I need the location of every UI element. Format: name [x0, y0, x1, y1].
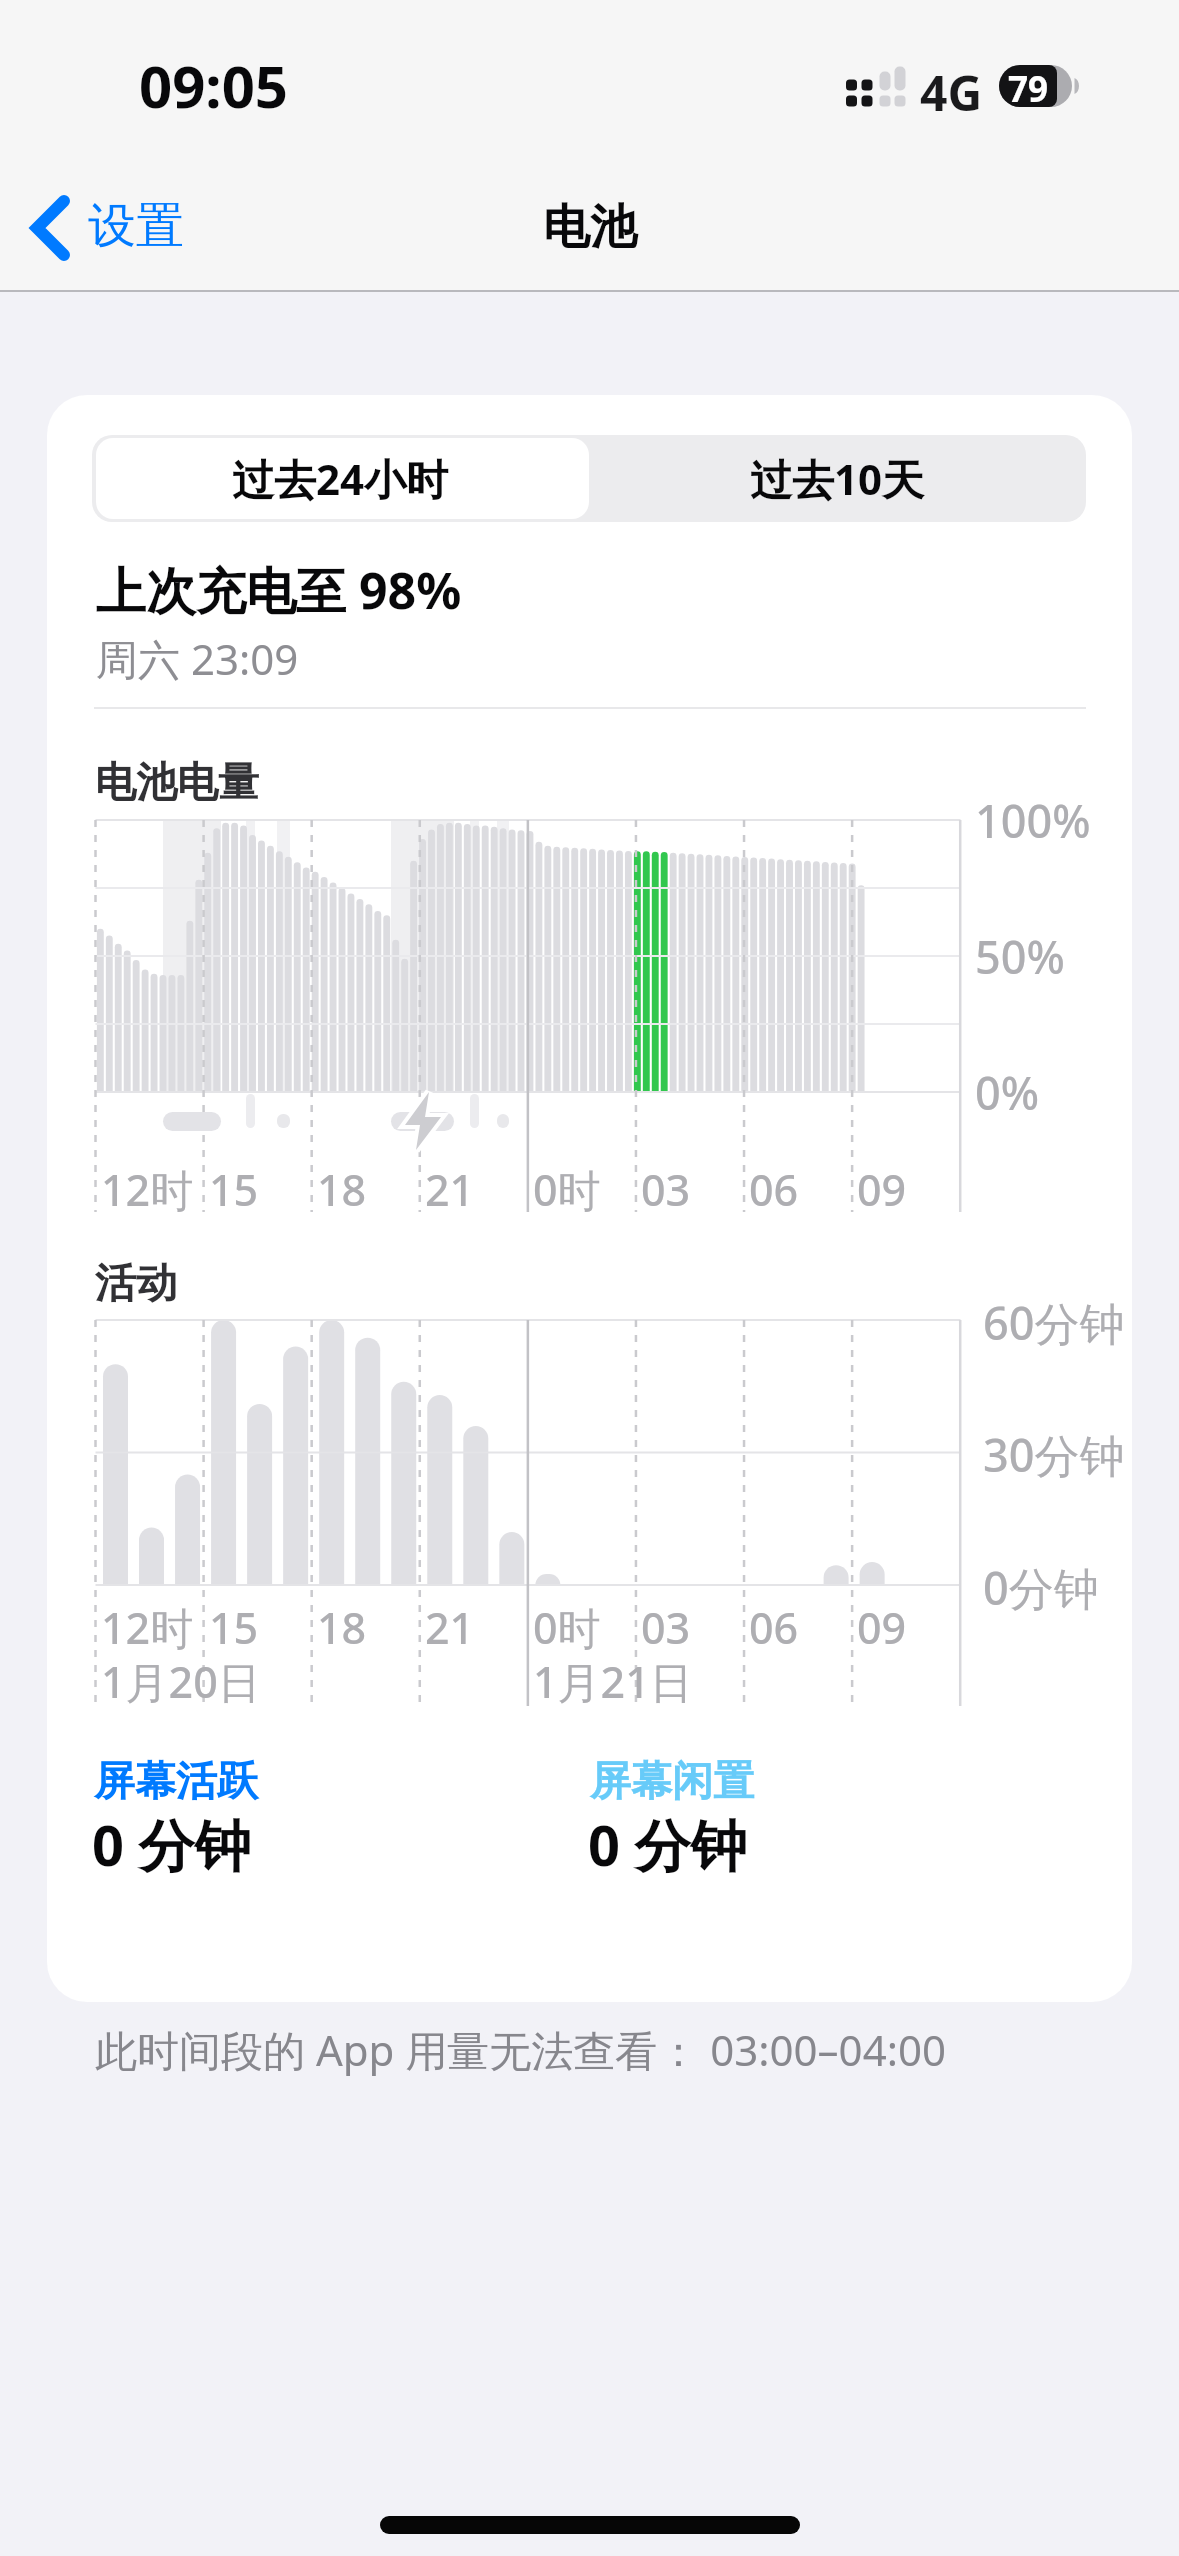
staticText: 4G: [920, 60, 983, 125]
staticText: 过去24小时: [232, 450, 449, 507]
staticText: 06: [749, 1160, 799, 1219]
staticText: 周六 23:09: [96, 630, 299, 687]
staticText: 79: [1008, 65, 1049, 107]
staticText: 100%: [975, 790, 1091, 851]
staticText: 上次充电至 98%: [96, 556, 462, 624]
staticText: 18: [317, 1598, 367, 1657]
staticText: 15: [209, 1160, 259, 1219]
staticText: 0时: [533, 1598, 601, 1657]
staticText: 电池: [543, 198, 637, 257]
staticText: 此时间段的 App 用量无法查看： 03:00–04:00: [95, 2021, 946, 2078]
staticText: 30分钟: [983, 1424, 1125, 1485]
staticText: 0%: [975, 1062, 1040, 1123]
staticText: 0 分钟: [588, 1806, 747, 1882]
staticText: 06: [749, 1598, 799, 1657]
staticText: 屏幕闲置: [590, 1756, 754, 1808]
staticText: 0时: [533, 1160, 601, 1219]
staticText: 60分钟: [983, 1292, 1125, 1353]
staticText: 电池电量: [95, 757, 259, 809]
staticText: 03: [641, 1598, 691, 1657]
staticText: 03: [641, 1160, 691, 1219]
button[interactable]: 设置: [20, 190, 220, 265]
staticText: 09: [857, 1160, 907, 1219]
staticText: 活动: [95, 1258, 177, 1310]
staticText: 过去10天: [750, 450, 925, 507]
button[interactable]: 过去10天: [589, 435, 1086, 522]
staticText: 12时: [101, 1598, 194, 1657]
staticText: 50%: [975, 926, 1065, 987]
staticText: 0 分钟: [92, 1806, 251, 1882]
staticText: 21: [425, 1160, 475, 1219]
staticText: 1月21日: [533, 1652, 693, 1711]
button[interactable]: 过去24小时: [92, 435, 589, 522]
staticText: 09:05: [139, 46, 289, 125]
staticText: 设置: [88, 196, 184, 256]
staticText: 屏幕活跃: [94, 1756, 258, 1808]
staticText: 18: [317, 1160, 367, 1219]
staticText: 0分钟: [983, 1557, 1099, 1618]
staticText: 21: [425, 1598, 475, 1657]
staticText: 12时: [101, 1160, 194, 1219]
staticText: 09: [857, 1598, 907, 1657]
staticText: 1月20日: [101, 1652, 261, 1711]
staticText: 15: [209, 1598, 259, 1657]
